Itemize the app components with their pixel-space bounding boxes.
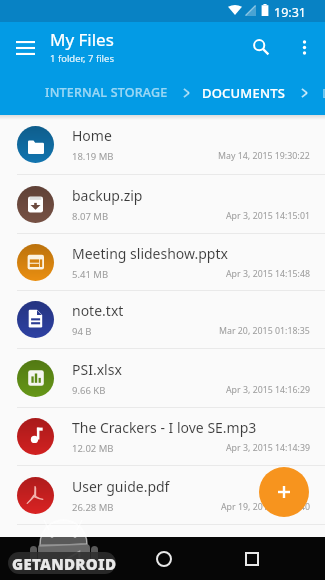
staticText: backup.zip — [72, 186, 143, 205]
staticText: User guide.pdf — [72, 477, 170, 496]
button[interactable]: backup.zip — [0, 175, 325, 234]
button[interactable]: Back — [62, 547, 85, 570]
staticText: Apr 3, 2015 14:14:39 — [226, 442, 310, 454]
button[interactable]: The Crackers - I love SE.mp3 — [0, 408, 325, 466]
button[interactable]: Recents — [240, 547, 263, 570]
staticText: note.txt — [72, 301, 124, 320]
staticText: The Crackers - I love SE.mp3 — [72, 418, 257, 437]
staticText: 9.66 KB — [72, 384, 106, 397]
staticText: My Files — [50, 28, 114, 51]
staticText: 5.41 MB — [72, 268, 109, 281]
staticText: 8.07 MB — [72, 210, 109, 223]
button[interactable]: User guide.pdf — [0, 466, 325, 525]
staticText: 19:31 — [274, 4, 306, 21]
button[interactable]: Search — [244, 30, 278, 64]
button[interactable]: More options — [288, 32, 320, 64]
button[interactable]: PSI.xlsx — [0, 349, 325, 408]
staticText: Mar 20, 2015 01:18:35 — [219, 325, 310, 337]
staticText: PSI.xlsx — [72, 360, 122, 379]
button[interactable]: Meeting slideshow.pptx — [0, 234, 325, 291]
staticText: 26.28 MB — [72, 501, 114, 514]
staticText: Apr 19, 2015 11:23:40 — [221, 501, 310, 513]
staticText: Apr 3, 2015 14:15:48 — [226, 268, 310, 280]
staticText: INTERNAL STORAGE — [45, 84, 168, 101]
staticText: Home — [72, 126, 112, 145]
staticText: DOCUMENTS — [202, 84, 286, 102]
staticText: Apr 3, 2015 14:15:01 — [226, 210, 310, 222]
staticText: D — [322, 84, 325, 102]
staticText: 94 B — [72, 325, 92, 338]
staticText: GETANDROID — [12, 554, 117, 574]
staticText: 1 folder, 7 files — [50, 52, 114, 65]
staticText: Apr 3, 2015 14:16:29 — [226, 384, 310, 396]
staticText: Meeting slideshow.pptx — [72, 244, 228, 263]
button[interactable]: Menu — [16, 41, 35, 55]
button[interactable]: Home — [0, 115, 325, 175]
button[interactable]: DOCUMENTS — [202, 80, 286, 105]
staticText: 12.02 MB — [72, 442, 114, 455]
staticText: 18.19 MB — [72, 150, 114, 163]
button[interactable]: D — [322, 80, 325, 105]
button[interactable]: Add — [259, 467, 309, 517]
button[interactable]: Home — [152, 547, 175, 570]
button[interactable]: INTERNAL STORAGE — [45, 80, 168, 105]
button[interactable]: note.txt — [0, 291, 325, 349]
staticText: May 14, 2015 19:30:22 — [218, 150, 310, 162]
